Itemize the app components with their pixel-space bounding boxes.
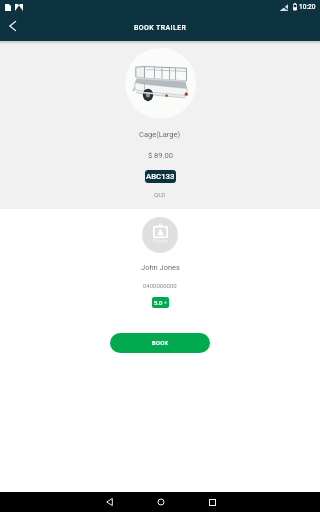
staticText: John Jones (141, 263, 180, 272)
staticText: $ 89.00 (148, 151, 173, 160)
staticText: 5.0 (154, 299, 163, 306)
button[interactable]: Home (151, 492, 171, 512)
staticText: 0400000000 (143, 282, 177, 289)
staticText: QLD (154, 191, 166, 198)
staticText: Photo (153, 238, 168, 244)
button[interactable]: Back (0, 14, 24, 38)
staticText: BOOK TRAILER (134, 24, 187, 32)
staticText: BOOK (152, 340, 169, 347)
staticText: Cage(Large) (139, 130, 181, 139)
staticText: 10:20 (299, 3, 316, 11)
button[interactable]: BOOK (110, 333, 210, 353)
button[interactable]: Recents (202, 492, 222, 512)
staticText: ABC133 (146, 172, 175, 181)
button[interactable]: Back (99, 492, 119, 512)
